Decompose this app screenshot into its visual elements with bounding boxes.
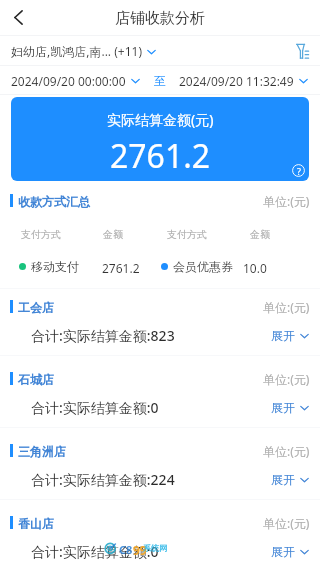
staticText: C8: [119, 542, 133, 557]
button[interactable]: Back: [0, 0, 36, 35]
staticText: 金额: [103, 228, 123, 241]
button[interactable]: 实际结算金额(元): [11, 97, 309, 181]
button[interactable]: 展开: [271, 400, 310, 415]
staticText: 金额: [250, 228, 270, 241]
button[interactable]: 展开: [271, 472, 310, 487]
staticText: 单位:(元): [263, 443, 310, 459]
button[interactable]: 展开: [271, 544, 310, 559]
button[interactable]: 2024/09/20 00:00:00: [11, 66, 141, 95]
staticText: 2024/09/20 00:00:00: [11, 73, 126, 89]
staticText: 香山店: [18, 516, 54, 531]
staticText: 工会店: [18, 300, 54, 315]
staticText: 2024/09/20 11:32:49: [179, 73, 294, 89]
staticText: 移动支付: [31, 259, 79, 274]
staticText: 合计:实际结算金额:0: [31, 398, 159, 416]
staticText: 支付方式: [167, 228, 207, 241]
staticText: 至: [154, 73, 166, 88]
staticText: 2761.2: [110, 134, 211, 178]
staticText: 系统网: [143, 543, 167, 553]
button[interactable]: 展开: [271, 328, 310, 343]
staticText: 合计:实际结算金额:224: [31, 470, 175, 488]
staticText: 石城店: [18, 372, 54, 387]
staticText: 2761.2: [102, 260, 140, 276]
staticText: ?: [297, 165, 301, 177]
button[interactable]: Filter: [287, 36, 320, 66]
staticText: 实际结算金额(元): [107, 110, 214, 129]
staticText: 展开: [271, 544, 295, 559]
staticText: 99: [133, 542, 147, 558]
staticText: 支付方式: [21, 228, 61, 241]
staticText: 三角洲店: [18, 444, 66, 459]
staticText: 展开: [271, 400, 295, 415]
staticText: 收款方式汇总: [18, 194, 90, 209]
staticText: 单位:(元): [263, 371, 310, 387]
staticText: 合计:实际结算金额:823: [31, 326, 175, 344]
button[interactable]: Help: [292, 164, 305, 177]
button[interactable]: 2024/09/20 11:32:49: [179, 66, 309, 95]
staticText: 展开: [271, 328, 295, 343]
staticText: 单位:(元): [263, 193, 310, 209]
staticText: 单位:(元): [263, 299, 310, 315]
staticText: 会员优惠券: [173, 259, 233, 274]
staticText: 展开: [271, 472, 295, 487]
staticText: 店铺收款分析: [115, 9, 205, 28]
staticText: 合计:实际结算金额:0: [31, 542, 159, 560]
staticText: 单位:(元): [263, 515, 310, 531]
staticText: 妇幼店,凯鸿店,南... (+11): [11, 43, 142, 59]
staticText: 10.0: [243, 260, 267, 276]
button[interactable]: 妇幼店,凯鸿店,南... (+11): [11, 36, 287, 66]
